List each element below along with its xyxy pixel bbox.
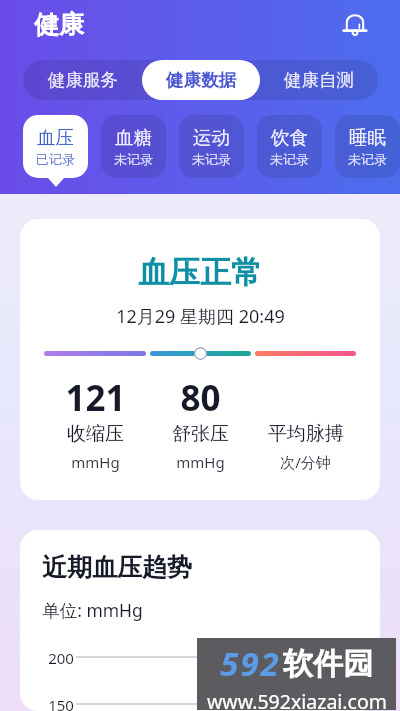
staticText: mmHg — [71, 452, 120, 472]
staticText: 单位: mmHg — [42, 598, 143, 622]
staticText: 200 — [48, 648, 74, 668]
button[interactable]: Notifications — [339, 8, 371, 40]
staticText: 平均脉搏 — [268, 422, 344, 446]
staticText: 健康 — [34, 9, 84, 40]
staticText: 80 — [180, 374, 221, 412]
button[interactable]: 饮食 — [257, 115, 322, 178]
staticText: 12月29 星期四 20:49 — [116, 304, 285, 329]
staticText: 健康服务 — [48, 69, 118, 91]
staticText: 睡眠 — [349, 126, 386, 149]
staticText: 舒张压 — [172, 422, 229, 446]
staticText: 次/分钟 — [280, 452, 331, 472]
staticText: 血糖 — [115, 126, 152, 149]
staticText: 收缩压 — [67, 422, 124, 446]
button[interactable]: 血糖 — [101, 115, 166, 178]
staticText: 592 — [220, 641, 281, 686]
button[interactable]: 睡眠 — [335, 115, 400, 178]
staticText: 健康自测 — [284, 69, 354, 91]
staticText: mmHg — [176, 452, 225, 472]
staticText: 已记录 — [36, 151, 75, 167]
button[interactable]: 健康自测 — [260, 60, 378, 100]
staticText: 未记录 — [270, 151, 309, 167]
staticText: 未记录 — [114, 151, 153, 167]
staticText: 150 — [48, 695, 74, 711]
button[interactable]: 健康数据 — [142, 60, 260, 100]
button[interactable]: 运动 — [179, 115, 244, 178]
staticText: 未记录 — [192, 151, 231, 167]
button[interactable]: 健康服务 — [23, 60, 142, 100]
staticText: 未记录 — [348, 151, 387, 167]
staticText: 软件园 — [283, 645, 373, 683]
staticText: 饮食 — [271, 126, 308, 149]
staticText: 121 — [65, 374, 126, 412]
staticText: 健康数据 — [166, 69, 236, 91]
staticText: 血压 — [37, 126, 74, 149]
staticText: 近期血压趋势 — [42, 552, 192, 583]
button[interactable]: 血压 — [23, 115, 88, 178]
staticText: 血压正常 — [138, 253, 262, 292]
staticText: 运动 — [193, 126, 230, 149]
staticText: www.592xiazai.com — [207, 688, 387, 710]
